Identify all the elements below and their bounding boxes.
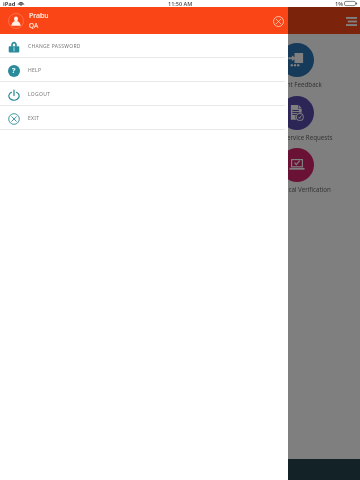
button[interactable] [280, 43, 314, 77]
button[interactable]: Open navigation menu [342, 12, 360, 30]
staticText: LOGOUT [28, 91, 51, 98]
button[interactable]: Close navigation drawer [270, 13, 286, 29]
button[interactable] [280, 148, 314, 182]
button[interactable]: LOGOUT [0, 82, 288, 106]
button[interactable]: ? [0, 58, 288, 82]
staticText: QA [29, 21, 39, 30]
staticText: iPad [3, 0, 16, 7]
staticText: EXIT [28, 115, 40, 122]
button[interactable] [280, 96, 314, 130]
staticText: ? [12, 66, 16, 76]
staticText: Patient Feedback [227, 80, 360, 88]
staticText: 1% [335, 0, 343, 7]
staticText: CHANGE PASSWORD [28, 43, 81, 50]
staticText: Service Requests [238, 133, 360, 141]
staticText: Physical Verification [232, 185, 360, 193]
button[interactable]: CHANGE PASSWORD [0, 34, 288, 58]
staticText: 11:50 AM [168, 0, 193, 7]
staticText: HELP [28, 67, 42, 74]
button[interactable]: EXIT [0, 106, 288, 130]
staticText: Prabu [29, 11, 49, 21]
